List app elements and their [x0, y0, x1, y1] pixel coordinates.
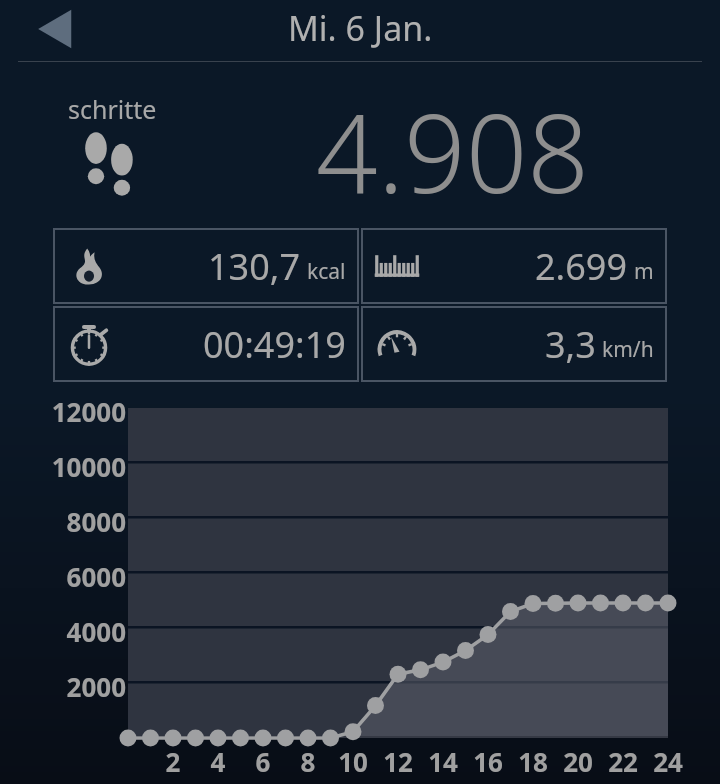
staticText: Mi. 6 Jan. [288, 5, 433, 51]
staticText: 4000 [66, 614, 126, 649]
staticText: kcal [307, 257, 346, 286]
staticText: 00:49:19 [203, 320, 346, 369]
staticText: 20 [561, 744, 595, 779]
button[interactable]: 130,7 [54, 229, 358, 303]
staticText: 2000 [66, 669, 126, 704]
button[interactable]: 3,3 [362, 307, 666, 381]
staticText: 12000 [51, 394, 126, 429]
button[interactable]: 2.699 [362, 229, 666, 303]
button[interactable]: Back [18, 0, 90, 58]
staticText: 4.908 [316, 78, 590, 225]
button[interactable]: 00:49:19 [54, 307, 358, 381]
staticText: schritte [68, 92, 157, 126]
staticText: 8000 [66, 504, 126, 539]
staticText: 130,7 [208, 242, 301, 291]
staticText: 4 [201, 744, 235, 779]
staticText: 10 [336, 744, 370, 779]
staticText: 2 [156, 744, 190, 779]
staticText: 12 [381, 744, 415, 779]
staticText: 22 [606, 744, 640, 779]
staticText: m [634, 257, 654, 286]
staticText: 3,3 [545, 320, 596, 369]
staticText: 16 [471, 744, 505, 779]
staticText: 6000 [66, 559, 126, 594]
staticText: 18 [516, 744, 550, 779]
staticText: 2.699 [535, 242, 628, 291]
staticText: 14 [426, 744, 460, 779]
staticText: 24 [651, 744, 685, 779]
staticText: km/h [602, 335, 654, 364]
staticText: 8 [291, 744, 325, 779]
staticText: 10000 [51, 449, 126, 484]
staticText: 6 [246, 744, 280, 779]
